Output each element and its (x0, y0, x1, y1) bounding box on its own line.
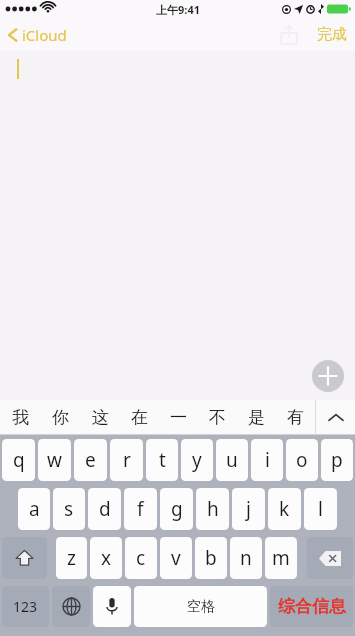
staticText: 空格 (187, 598, 215, 616)
staticText: 你 (52, 407, 69, 428)
staticText: t (159, 447, 166, 473)
staticText: 我 (12, 407, 29, 428)
button[interactable]: n (230, 537, 262, 579)
staticText: j (246, 496, 251, 522)
staticText: e (85, 447, 96, 473)
staticText: h (207, 496, 219, 522)
button[interactable]: 一 (159, 400, 198, 435)
staticText: 上午9:41 (156, 2, 200, 17)
button[interactable]: f (124, 488, 157, 530)
staticText: k (279, 496, 290, 522)
button[interactable]: Shift (2, 537, 47, 579)
staticText: b (205, 545, 217, 571)
button[interactable]: v (160, 537, 192, 579)
staticText: o (296, 447, 308, 473)
staticText: m (272, 545, 290, 571)
button[interactable]: 有 (276, 400, 315, 435)
button[interactable]: Delete (307, 537, 353, 579)
staticText: d (99, 496, 111, 522)
staticText: f (137, 496, 144, 522)
button[interactable]: Share (276, 22, 302, 48)
button[interactable]: q (2, 439, 35, 481)
button[interactable]: Add (312, 360, 344, 392)
button[interactable]: 是 (237, 400, 276, 435)
button[interactable]: z (56, 537, 87, 579)
staticText: r (123, 447, 131, 473)
button[interactable]: 这 (80, 400, 120, 435)
button[interactable]: Change keyboard (52, 586, 90, 627)
staticText: g (171, 496, 183, 522)
button[interactable]: k (268, 488, 301, 530)
button[interactable]: p (321, 439, 353, 481)
button[interactable]: 123 (2, 586, 49, 627)
button[interactable]: a (18, 488, 50, 530)
button[interactable]: 完成 (317, 25, 347, 44)
staticText: 123 (13, 597, 38, 616)
staticText: 不 (209, 407, 226, 428)
button[interactable]: i (251, 439, 283, 481)
staticText: 在 (131, 407, 148, 428)
button[interactable]: g (160, 488, 193, 530)
staticText: 有 (287, 407, 304, 428)
button[interactable]: c (125, 537, 157, 579)
button[interactable]: m (265, 537, 297, 579)
staticText: 这 (92, 407, 109, 428)
button[interactable]: d (88, 488, 121, 530)
button[interactable]: x (90, 537, 122, 579)
button[interactable]: t (146, 439, 178, 481)
staticText: 综合信息 (278, 596, 346, 617)
button[interactable]: 我 (0, 400, 40, 435)
staticText: p (331, 447, 343, 473)
staticText: q (13, 447, 25, 473)
staticText: 完成 (317, 25, 347, 44)
button[interactable]: j (232, 488, 265, 530)
button[interactable]: 你 (40, 400, 80, 435)
staticText: x (101, 545, 112, 571)
staticText: z (67, 545, 76, 571)
button[interactable]: 综合信息 (270, 586, 353, 627)
button[interactable]: e (74, 439, 107, 481)
button[interactable]: Dictation (93, 586, 131, 627)
staticText: a (29, 496, 40, 522)
button[interactable]: s (53, 488, 85, 530)
button[interactable]: l (304, 488, 337, 530)
staticText: n (240, 545, 252, 571)
staticText: y (192, 447, 202, 473)
button[interactable]: b (195, 537, 227, 579)
button[interactable]: 不 (198, 400, 237, 435)
button[interactable]: Expand candidates (316, 400, 355, 435)
button[interactable]: 空格 (134, 586, 267, 627)
staticText: i (265, 447, 270, 473)
staticText: l (318, 496, 323, 522)
button[interactable]: y (181, 439, 213, 481)
button[interactable]: o (286, 439, 318, 481)
button[interactable]: w (38, 439, 71, 481)
staticText: v (171, 545, 181, 571)
button[interactable]: h (196, 488, 229, 530)
staticText: w (47, 447, 62, 473)
staticText: 一 (170, 407, 187, 428)
staticText: 是 (248, 407, 265, 428)
button[interactable]: 在 (120, 400, 159, 435)
staticText: c (136, 545, 146, 571)
button[interactable]: u (216, 439, 248, 481)
staticText: u (226, 447, 238, 473)
button[interactable]: r (110, 439, 143, 481)
staticText: iCloud (22, 25, 67, 45)
staticText: s (64, 496, 74, 522)
button[interactable]: iCloud (7, 25, 67, 45)
